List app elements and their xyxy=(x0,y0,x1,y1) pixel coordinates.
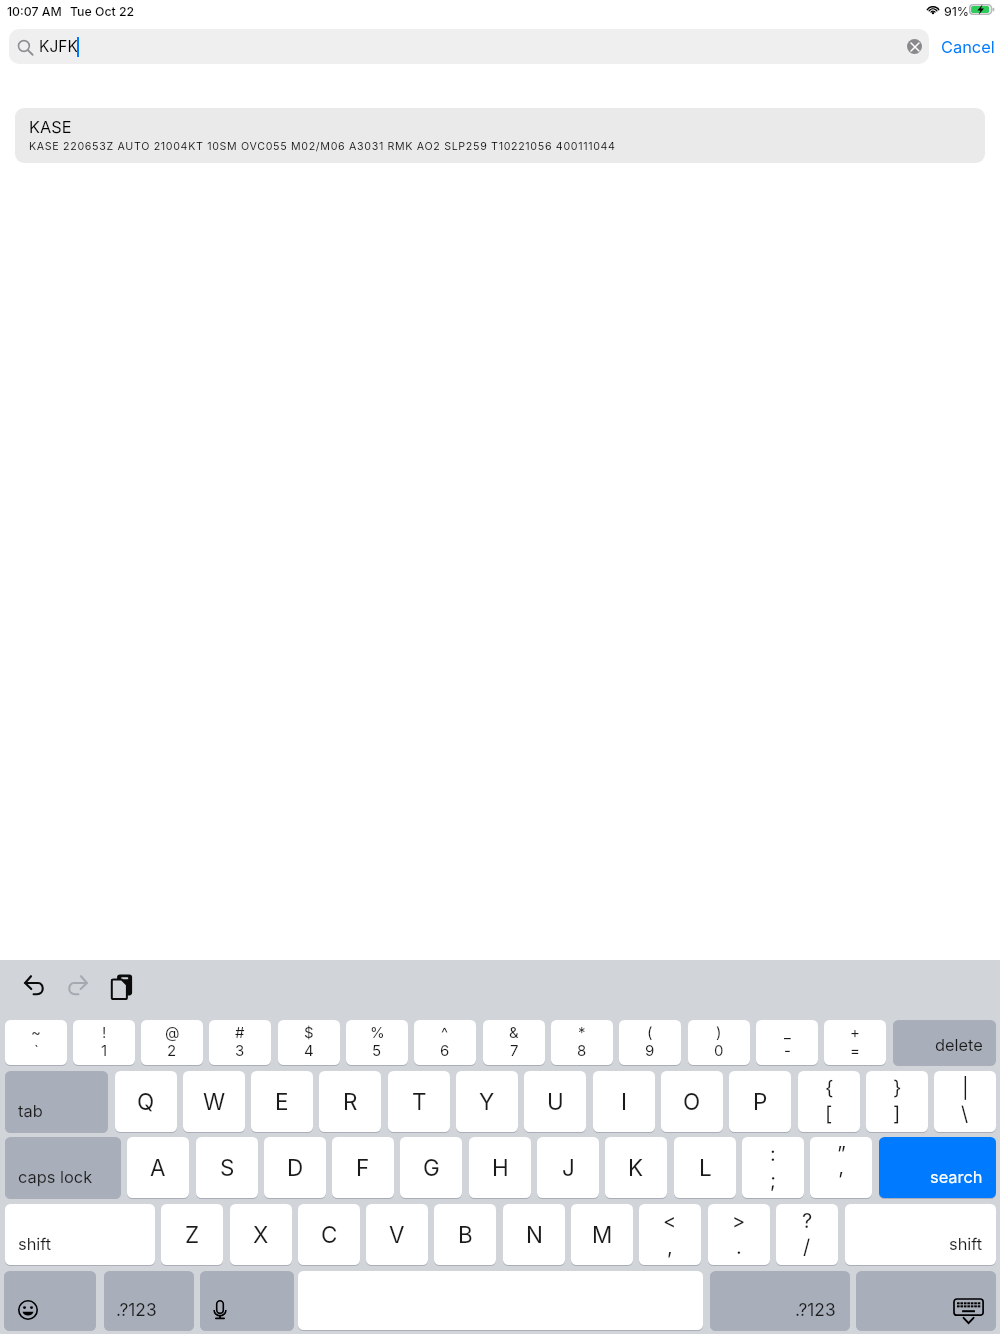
staticText: { xyxy=(825,1076,834,1100)
staticText: Q xyxy=(137,1088,155,1115)
button[interactable]: .?123 xyxy=(104,1271,194,1330)
button[interactable]: shift xyxy=(845,1204,996,1265)
staticText: W xyxy=(203,1088,226,1115)
button[interactable]: : xyxy=(742,1137,804,1198)
staticText: > xyxy=(732,1209,746,1233)
staticText: ` xyxy=(34,1041,39,1059)
staticText: % xyxy=(370,1023,385,1041)
button[interactable]: search xyxy=(879,1137,996,1198)
button[interactable]: caps lock xyxy=(5,1137,121,1198)
staticText: KJFK xyxy=(39,37,78,56)
button[interactable]: L xyxy=(674,1137,736,1198)
staticText: 8 xyxy=(577,1041,587,1059)
staticText: Z xyxy=(185,1221,200,1248)
button[interactable]: ! xyxy=(73,1020,135,1065)
staticText: : xyxy=(770,1142,776,1166)
button[interactable]: _ xyxy=(756,1020,818,1065)
button[interactable]: K xyxy=(605,1137,667,1198)
staticText: search xyxy=(930,1167,983,1187)
button[interactable]: G xyxy=(400,1137,462,1198)
button[interactable]: ” xyxy=(810,1137,872,1198)
button[interactable]: $ xyxy=(278,1020,340,1065)
button[interactable]: { xyxy=(798,1071,860,1132)
staticText: 10:07 AM xyxy=(7,4,62,19)
button[interactable]: ~ xyxy=(5,1020,67,1065)
staticText: 2 xyxy=(167,1041,177,1059)
staticText: / xyxy=(803,1235,811,1259)
button[interactable]: Cancel xyxy=(941,29,1000,64)
button[interactable]: A xyxy=(127,1137,189,1198)
button[interactable]: S xyxy=(196,1137,258,1198)
button[interactable]: + xyxy=(824,1020,886,1065)
button[interactable]: D xyxy=(264,1137,326,1198)
staticText: < xyxy=(663,1209,677,1233)
button[interactable]: I xyxy=(593,1071,655,1132)
staticText: G xyxy=(423,1154,440,1181)
button[interactable]: Emoji xyxy=(4,1271,96,1330)
button[interactable]: Z xyxy=(161,1204,223,1265)
button[interactable]: delete xyxy=(893,1020,996,1065)
button[interactable]: F xyxy=(332,1137,394,1198)
button[interactable]: < xyxy=(639,1204,701,1265)
button[interactable]: KASE xyxy=(15,108,985,163)
button[interactable]: P xyxy=(729,1071,791,1132)
staticText: caps lock xyxy=(18,1167,93,1187)
button[interactable]: Redo xyxy=(67,975,88,996)
button[interactable]: Hide keyboard xyxy=(856,1271,996,1330)
button[interactable]: V xyxy=(366,1204,428,1265)
staticText: H xyxy=(492,1154,509,1181)
button[interactable]: T xyxy=(388,1071,450,1132)
button[interactable]: Paste xyxy=(111,973,134,1000)
staticText: \ xyxy=(961,1102,969,1126)
button[interactable]: > xyxy=(708,1204,770,1265)
staticText: ” xyxy=(837,1142,846,1166)
button[interactable]: & xyxy=(483,1020,545,1065)
button[interactable]: R xyxy=(319,1071,381,1132)
button[interactable]: ( xyxy=(619,1020,681,1065)
staticText: Y xyxy=(479,1088,495,1115)
staticText: = xyxy=(850,1041,860,1059)
staticText: Tue Oct 22 xyxy=(70,4,135,19)
button[interactable]: Y xyxy=(456,1071,518,1132)
button[interactable]: Undo xyxy=(24,975,45,996)
button[interactable]: @ xyxy=(141,1020,203,1065)
button[interactable]: J xyxy=(537,1137,599,1198)
staticText: 7 xyxy=(510,1041,519,1059)
button[interactable]: H xyxy=(469,1137,531,1198)
button[interactable]: * xyxy=(551,1020,613,1065)
button[interactable]: tab xyxy=(5,1071,108,1132)
button[interactable]: ? xyxy=(776,1204,838,1265)
button[interactable]: ) xyxy=(688,1020,750,1065)
button[interactable]: E xyxy=(251,1071,313,1132)
button[interactable]: Dictate xyxy=(200,1271,294,1330)
button[interactable]: KJFK xyxy=(9,29,929,64)
staticText: 5 xyxy=(372,1041,382,1059)
button[interactable]: O xyxy=(661,1071,723,1132)
staticText: @ xyxy=(165,1023,180,1041)
button[interactable]: B xyxy=(434,1204,496,1265)
staticText: A xyxy=(150,1154,166,1181)
button[interactable]: X xyxy=(230,1204,292,1265)
button[interactable]: ^ xyxy=(414,1020,476,1065)
staticText: T xyxy=(412,1088,427,1115)
button[interactable]: } xyxy=(866,1071,928,1132)
button[interactable]: U xyxy=(524,1071,586,1132)
button[interactable]: Q xyxy=(115,1071,177,1132)
other: Battery 91 percent, charging xyxy=(969,4,995,15)
button[interactable]: % xyxy=(346,1020,408,1065)
button[interactable]: .?123 xyxy=(710,1271,850,1330)
button[interactable]: W xyxy=(183,1071,245,1132)
button[interactable]: C xyxy=(298,1204,360,1265)
button[interactable]: Clear text xyxy=(907,39,922,54)
button[interactable]: | xyxy=(934,1071,996,1132)
staticText: 4 xyxy=(304,1041,314,1059)
staticText: ; xyxy=(770,1168,777,1192)
staticText: shift xyxy=(949,1234,983,1254)
staticText: 3 xyxy=(235,1041,245,1059)
button[interactable]: M xyxy=(571,1204,633,1265)
button[interactable]: # xyxy=(209,1020,271,1065)
staticText: C xyxy=(321,1221,338,1248)
button[interactable]: shift xyxy=(5,1204,155,1265)
button[interactable]: N xyxy=(503,1204,565,1265)
